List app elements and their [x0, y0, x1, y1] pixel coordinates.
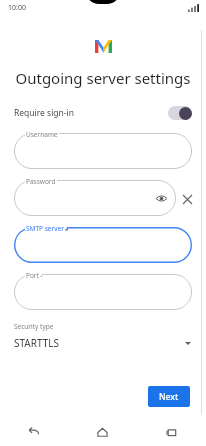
button[interactable]: Security type: [0, 322, 206, 350]
button[interactable]: Require sign-in: [0, 100, 206, 126]
button[interactable]: Username: [14, 133, 192, 169]
button[interactable]: Password: [14, 180, 176, 216]
staticText: Require sign-in: [14, 107, 75, 119]
staticText: Outgoing server settings: [15, 68, 191, 88]
staticText: Password: [26, 177, 56, 186]
staticText: 10:00: [8, 3, 26, 13]
button[interactable]: Back: [0, 418, 68, 446]
staticText: Security type: [14, 322, 54, 331]
button[interactable]: SMTP server: [14, 227, 192, 263]
staticText: Port: [26, 271, 39, 280]
staticText: Username: [26, 130, 58, 139]
staticText: SMTP server: [26, 224, 64, 233]
staticText: Next: [159, 391, 179, 403]
button[interactable]: Next: [148, 386, 190, 407]
staticText: STARTTLS: [14, 336, 60, 350]
button[interactable]: Clear password: [178, 190, 196, 208]
button[interactable]: Require sign-in toggle: [168, 106, 192, 120]
button[interactable]: Recent apps: [137, 418, 206, 446]
button[interactable]: Port: [14, 274, 192, 310]
button[interactable]: Show password: [152, 189, 170, 207]
button[interactable]: Home: [68, 418, 137, 446]
